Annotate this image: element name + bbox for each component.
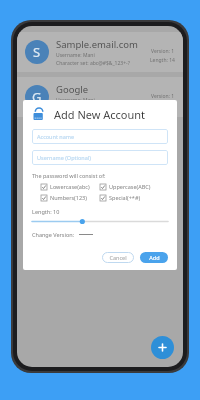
- staticText: The password will consist of:: [32, 172, 106, 179]
- staticText: Special(+*#): [109, 194, 141, 201]
- button[interactable]: [32, 218, 168, 225]
- staticText: Version: 1: [151, 48, 175, 55]
- button[interactable]: Lowercase(abc): [41, 182, 100, 191]
- staticText: Sample.email.com: [56, 38, 138, 51]
- staticText: G: [32, 88, 42, 106]
- staticText: Character set: abc@#$&_123+-?: [56, 105, 130, 112]
- staticText: Lowercase(abc): [50, 183, 90, 190]
- button[interactable]: Account name: [32, 129, 168, 144]
- button[interactable]: Username (Optional): [32, 150, 168, 165]
- staticText: Character set: abc@#$&_123+-?: [56, 60, 130, 67]
- button[interactable]: Add account: [151, 336, 174, 359]
- staticText: Account name: [37, 133, 75, 140]
- staticText: Add: [149, 254, 160, 261]
- button[interactable]: G: [17, 77, 183, 117]
- staticText: Length: 10: [32, 208, 60, 215]
- button[interactable]: Add: [140, 252, 168, 263]
- staticText: Username: Mani: [56, 52, 95, 59]
- staticText: Google: [56, 83, 89, 96]
- button[interactable]: Uppercase(ABC): [100, 182, 168, 191]
- staticText: Change Version:: [32, 231, 75, 238]
- button[interactable]: Numbers(123): [41, 193, 100, 202]
- button[interactable]: Cancel: [102, 252, 134, 263]
- staticText: Cancel: [109, 254, 127, 261]
- button[interactable]: Special(+*#): [100, 193, 168, 202]
- staticText: Length: 14: [150, 57, 175, 64]
- staticText: Username (Optional): [37, 154, 91, 161]
- staticText: Username: Mani: [56, 97, 95, 104]
- staticText: S: [33, 43, 41, 61]
- staticText: Uppercase(ABC): [109, 183, 151, 190]
- staticText: Numbers(123): [50, 194, 87, 201]
- button[interactable]: S: [17, 32, 183, 72]
- staticText: Add New Account: [54, 107, 146, 122]
- staticText: Version: 1: [151, 93, 175, 100]
